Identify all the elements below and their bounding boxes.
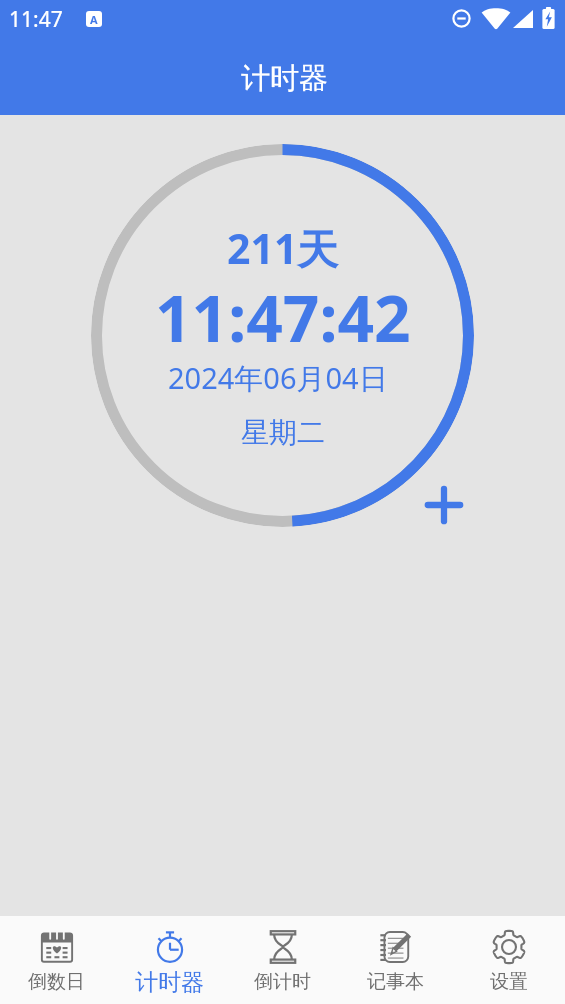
staticText: 2024年06月04日 [168,358,388,398]
staticText: 星期二 [241,415,325,450]
staticText: 11:47 [9,5,63,34]
staticText: A [90,12,98,27]
staticText: 倒计时 [254,970,311,994]
staticText: 设置 [490,970,528,994]
button[interactable]: 设置 [452,916,565,1004]
staticText: 计时器 [135,968,204,997]
button[interactable]: 倒数日 [0,916,113,1004]
staticText: 倒数日 [28,970,85,994]
button[interactable]: 计时器 211天 11:47:42 [91,144,474,527]
staticText: 记事本 [367,970,424,994]
staticText: 11:47:42 [155,274,411,361]
button[interactable]: 计时器 [113,916,226,1004]
button[interactable]: 记事本 [339,916,452,1004]
staticText: 计时器 [241,60,328,97]
staticText: 211天 [227,220,339,276]
button[interactable]: 倒计时 [226,916,339,1004]
button[interactable]: Add timer [420,481,468,529]
